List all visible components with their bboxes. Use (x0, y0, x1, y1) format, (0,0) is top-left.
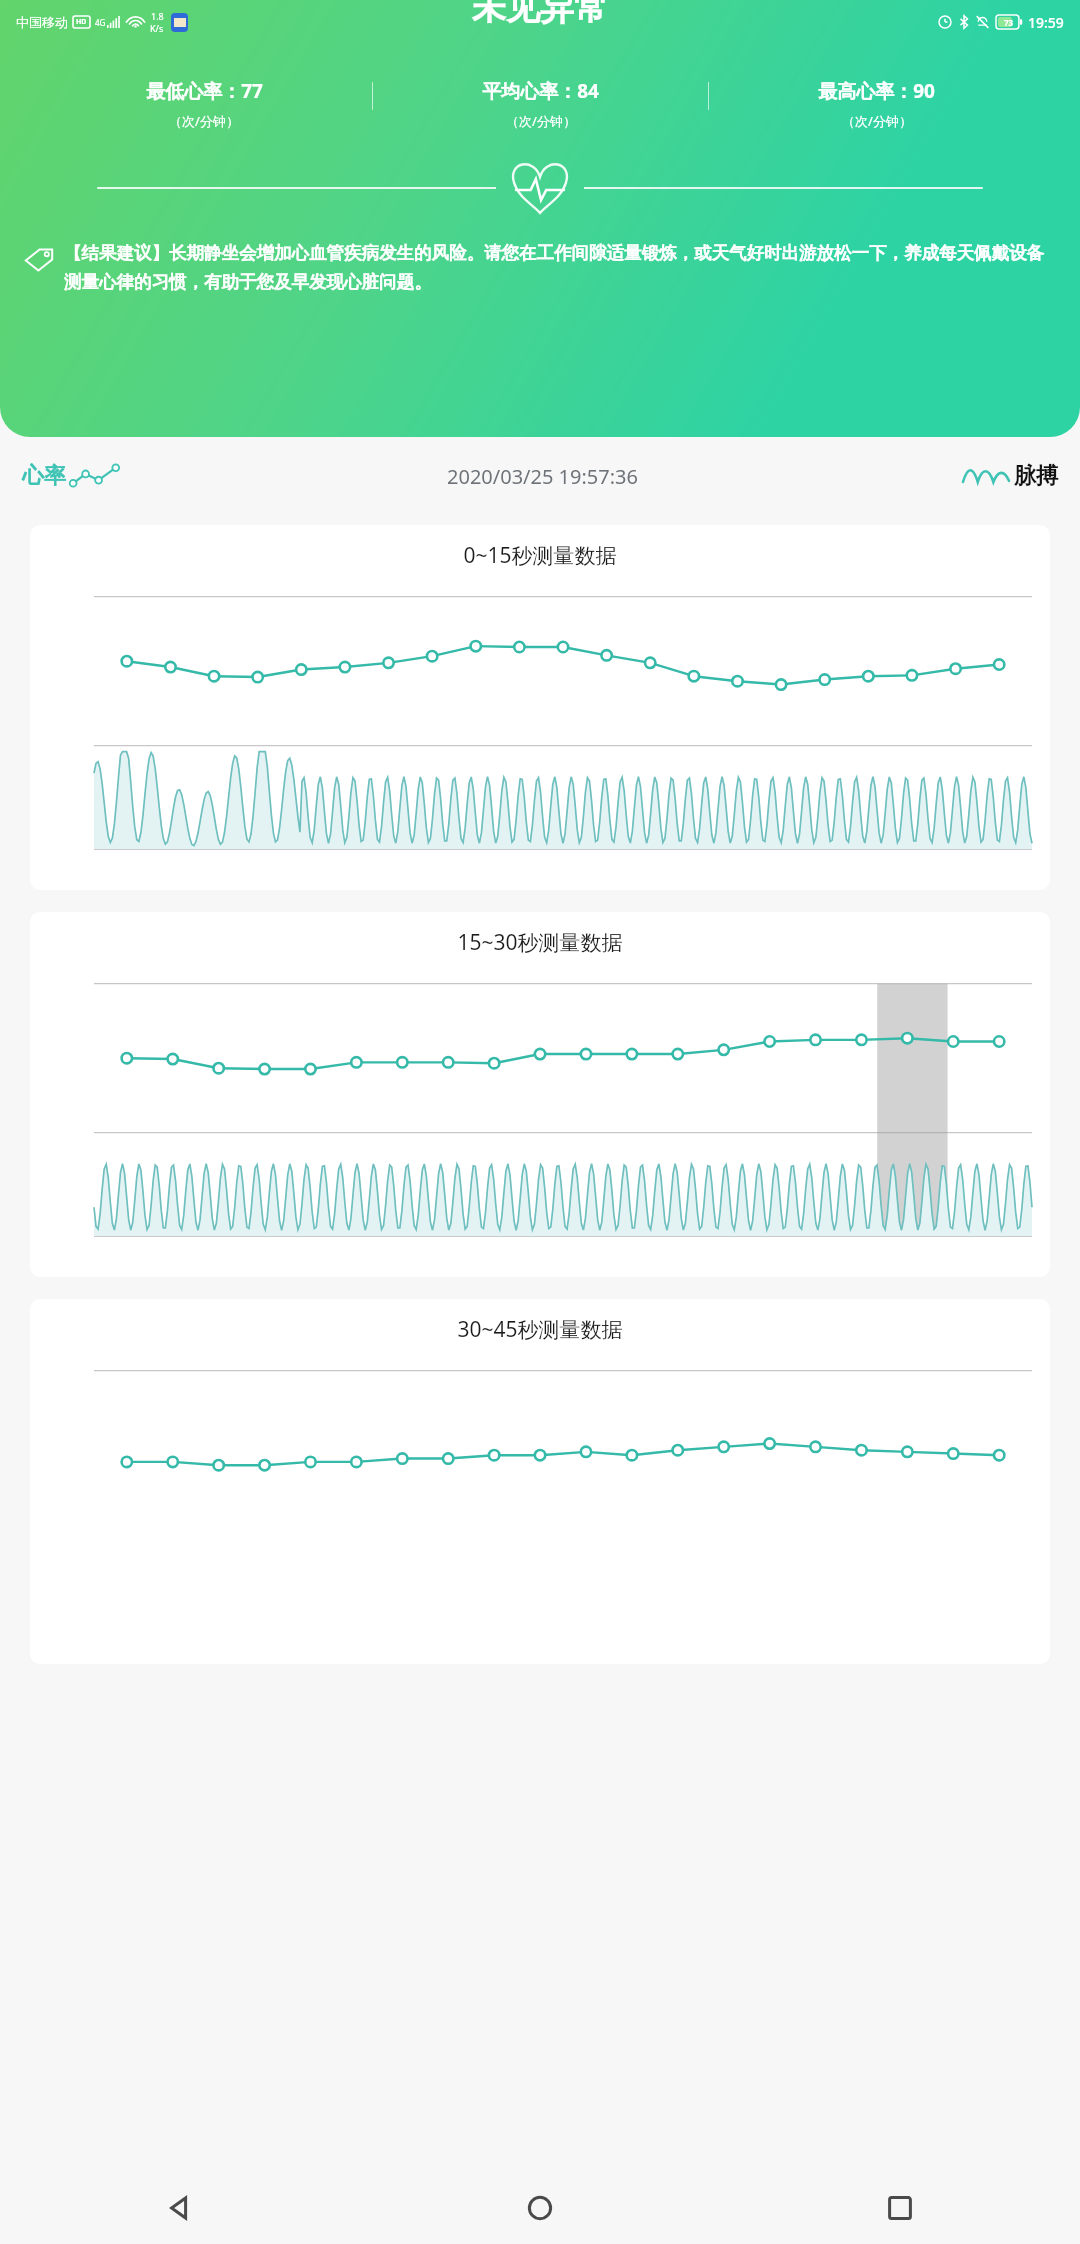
staticText: 2020/03/25 19:57:36 (447, 463, 638, 490)
button[interactable]: Recent apps (720, 2172, 1080, 2244)
button[interactable]: 15~30秒测量数据 (30, 912, 1050, 1277)
button[interactable]: Back (0, 2172, 360, 2244)
staticText: （次/分钟） (506, 112, 576, 130)
staticText: 最高心率：90 (818, 78, 935, 104)
staticText: （次/分钟） (169, 112, 239, 130)
staticText: 73 (1004, 17, 1014, 28)
button[interactable]: 30~45秒测量数据 (30, 1299, 1050, 1664)
staticText: 中国移动 (16, 14, 68, 30)
staticText: 4G (95, 17, 106, 28)
staticText: 脉搏 (1014, 462, 1058, 490)
button[interactable]: 0~15秒测量数据 (30, 525, 1050, 890)
staticText: 1.8 (151, 10, 164, 22)
staticText: 0~15秒测量数据 (30, 541, 1050, 570)
button[interactable]: Home (360, 2172, 720, 2244)
staticText: 未见异常 (472, 0, 608, 29)
staticText: 平均心率：84 (482, 78, 599, 104)
staticText: 30~45秒测量数据 (30, 1315, 1050, 1344)
staticText: 【结果建议】长期静坐会增加心血管疾病发生的风险。请您在工作间隙适量锻炼，或天气好… (64, 242, 1050, 293)
staticText: 心率 (22, 462, 66, 490)
staticText: K/s (150, 22, 164, 34)
staticText: 19:59 (1028, 13, 1064, 32)
staticText: （次/分钟） (842, 112, 912, 130)
staticText: HD (76, 17, 87, 27)
staticText: 15~30秒测量数据 (30, 928, 1050, 957)
staticText: 最低心率：77 (146, 78, 263, 104)
